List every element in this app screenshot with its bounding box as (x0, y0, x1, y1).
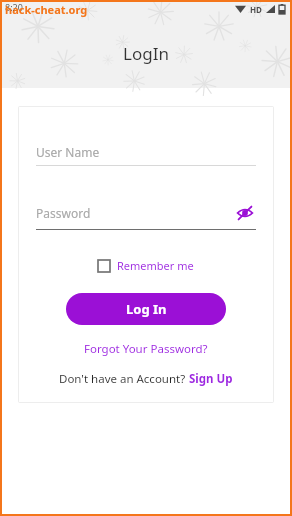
button[interactable]: Toggle password visibility (234, 202, 256, 224)
staticText: Don't have an Account? (59, 371, 189, 387)
staticText: User Name (36, 144, 256, 160)
staticText: Sign Up (189, 371, 233, 387)
staticText: Log In (126, 300, 167, 318)
staticText: HD (250, 4, 262, 15)
staticText: Forgot Your Password? (84, 341, 208, 357)
staticText: Password (36, 205, 234, 221)
staticText: Remember me (117, 258, 194, 273)
button[interactable]: Sign Up (189, 371, 233, 387)
staticText: hack-cheat.org (5, 2, 88, 17)
button[interactable]: Remember me (96, 256, 196, 275)
button[interactable]: Log In (66, 293, 226, 325)
button[interactable]: Forgot Your Password? (81, 338, 211, 360)
staticText: 8:20 (5, 1, 23, 13)
staticText: LogIn (123, 42, 169, 65)
